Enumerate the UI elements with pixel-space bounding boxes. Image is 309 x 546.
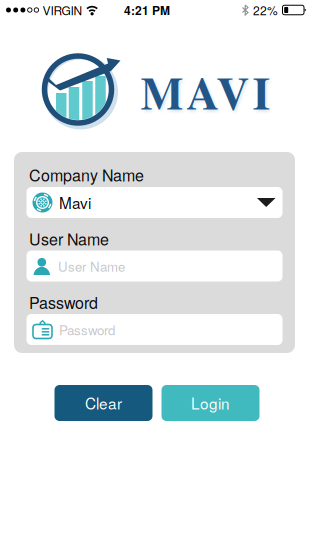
button[interactable]: Password text field (26, 314, 282, 345)
staticText: Password (29, 290, 98, 313)
button[interactable]: Login (161, 385, 259, 421)
staticText: Login (191, 392, 230, 414)
staticText: User Name (29, 227, 109, 250)
staticText: Password (59, 320, 115, 339)
staticText: MAVI (140, 59, 270, 125)
button[interactable]: Clear (54, 385, 152, 421)
staticText: Mavi (59, 191, 91, 213)
staticText: User Name (58, 256, 125, 276)
staticText: Clear (85, 392, 122, 414)
staticText: 4:21 PM (124, 1, 170, 19)
button[interactable]: User Name text field (26, 250, 282, 281)
button[interactable]: Company Name dropdown (26, 187, 282, 218)
staticText: 22% (253, 1, 278, 19)
staticText: Company Name (29, 163, 144, 186)
staticText: VIRGIN (43, 1, 83, 19)
